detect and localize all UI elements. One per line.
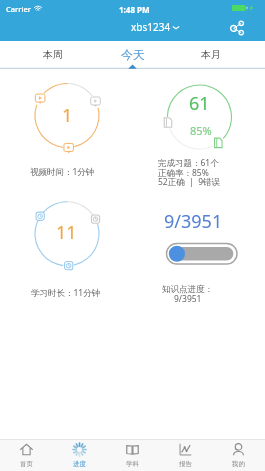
button[interactable]: 我的 [212, 439, 265, 471]
staticText: 学科 [126, 460, 139, 468]
staticText: 1:48 PM [119, 4, 150, 15]
staticText: 进度 [73, 460, 86, 468]
staticText: 本周 [43, 48, 63, 61]
staticText: 今天 [121, 47, 145, 62]
button[interactable]: 9/3951 [133, 188, 265, 308]
button[interactable]: 11 [0, 188, 133, 303]
staticText: 正确率：85% [158, 167, 209, 179]
staticText: 9/3951 [174, 293, 202, 305]
staticText: 本月 [201, 48, 221, 61]
button[interactable]: 今天 [111, 41, 155, 67]
button[interactable]: 报告 [159, 439, 212, 471]
staticText: 52正确 | 9错误 [158, 176, 221, 188]
button[interactable]: 1 [0, 70, 133, 182]
staticText: 视频时间：1分钟 [30, 166, 95, 178]
staticText: 报告 [179, 460, 192, 468]
staticText: 1 [62, 103, 73, 128]
button[interactable]: 首页 [0, 439, 53, 471]
staticText: 61 [189, 91, 210, 116]
staticText: 学习时长：11分钟 [31, 287, 101, 299]
button[interactable]: Share [227, 17, 247, 37]
staticText: 首页 [20, 460, 33, 468]
button[interactable]: 本月 [189, 41, 233, 67]
button[interactable]: 进度 [53, 439, 106, 471]
staticText: 知识点进度： [162, 284, 213, 295]
button[interactable]: 61 [133, 70, 265, 192]
staticText: 11 [56, 220, 77, 245]
staticText: 9/3951 [164, 209, 223, 234]
button[interactable]: 学科 [106, 439, 159, 471]
staticText: 完成习题：61个 [158, 157, 219, 169]
button[interactable]: xbs1234 [127, 17, 184, 37]
staticText: xbs1234 [131, 20, 171, 34]
button[interactable]: 本周 [31, 41, 75, 67]
staticText: Carrier [6, 4, 31, 14]
staticText: 85% [190, 123, 212, 138]
staticText: 我的 [232, 460, 245, 468]
